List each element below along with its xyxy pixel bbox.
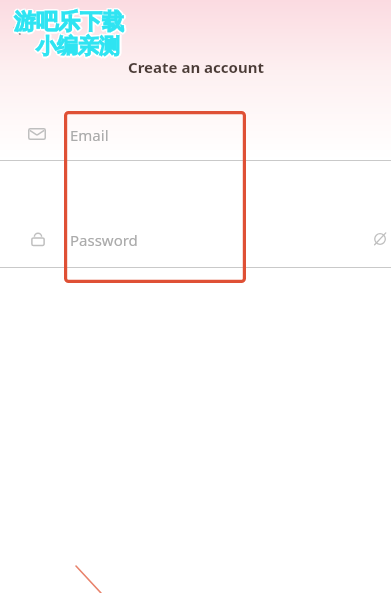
staticText: 小编亲测 [38, 33, 122, 59]
staticText: 游吧乐下载 [13, 7, 123, 35]
staticText: 小编亲测 [36, 32, 120, 58]
staticText: 游吧乐下载 [15, 7, 125, 35]
staticText: 游吧乐下载 [16, 8, 126, 36]
staticText: 小编亲测 [35, 33, 119, 59]
button[interactable]: Password [0, 219, 391, 267]
button[interactable]: Email [0, 112, 391, 160]
staticText: 小编亲测 [37, 34, 121, 60]
staticText: Create an account [128, 57, 264, 77]
staticText: 游吧乐下载 [14, 8, 124, 36]
staticText: 小编亲测 [37, 32, 121, 58]
staticText: 小编亲测 [36, 35, 120, 61]
staticText: 游吧乐下载 [15, 9, 125, 37]
staticText: 游吧乐下载 [13, 9, 123, 37]
staticText: 游吧乐下载 [13, 8, 123, 36]
staticText: Password [70, 230, 138, 250]
staticText: 小编亲测 [36, 33, 120, 59]
staticText: Email [70, 125, 109, 145]
staticText: 小编亲测 [35, 34, 119, 60]
staticText: 游吧乐下载 [14, 7, 124, 35]
button[interactable]: Show password [373, 226, 391, 252]
staticText: 小编亲测 [35, 32, 119, 58]
staticText: 游吧乐下载 [14, 10, 124, 38]
button[interactable]: Back [4, 14, 32, 42]
